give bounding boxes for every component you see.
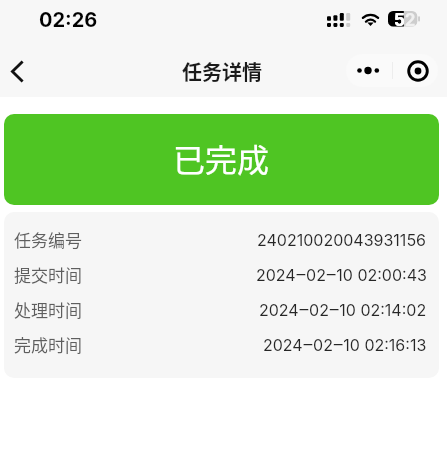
button[interactable]: 处理时间 — [4, 292, 439, 327]
staticText: 处理时间 — [14, 297, 82, 322]
button[interactable]: More options — [346, 54, 391, 87]
button[interactable]: Back — [0, 50, 39, 94]
button[interactable]: 完成时间 — [4, 327, 439, 362]
staticText: 52 — [394, 10, 416, 26]
staticText: 提交时间 — [14, 262, 82, 287]
staticText: 2024‒02‒10 02:14:02 — [259, 300, 427, 319]
button[interactable]: 提交时间 — [4, 257, 439, 292]
staticText: 52 — [394, 11, 404, 26]
staticText: 已完成 — [173, 135, 270, 181]
staticText: 240210020043931156 — [257, 230, 427, 249]
staticText: 完成时间 — [14, 332, 82, 357]
staticText: 02:26 — [39, 8, 98, 32]
staticText: 2024‒02‒10 02:00:43 — [256, 265, 427, 284]
staticText: 2024‒02‒10 02:16:13 — [263, 335, 427, 354]
button[interactable]: Close mini program — [392, 54, 438, 87]
button[interactable]: 已完成 — [4, 114, 439, 205]
button[interactable]: 任务编号 — [4, 222, 439, 257]
staticText: 任务编号 — [14, 227, 82, 252]
staticText: 任务详情 — [182, 57, 262, 86]
